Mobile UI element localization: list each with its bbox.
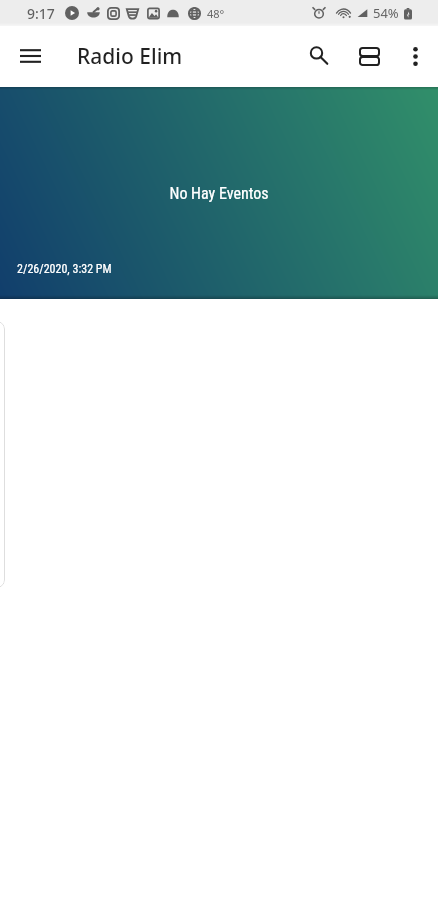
button[interactable]: No Hay Eventos: [0, 87, 438, 299]
button[interactable]: View agenda: [344, 32, 392, 80]
staticText: 2/26/2020, 3:32 PM: [17, 262, 112, 276]
staticText: No Hay Eventos: [169, 184, 269, 203]
button[interactable]: More options: [392, 33, 438, 79]
button[interactable]: Search: [296, 32, 344, 80]
button[interactable]: Menu: [0, 25, 60, 86]
staticText: 54%: [373, 4, 399, 22]
staticText: 48°: [207, 6, 225, 21]
staticText: Radio Elim: [77, 42, 183, 71]
button[interactable]: [0, 321, 5, 588]
staticText: 9:17: [27, 4, 55, 23]
